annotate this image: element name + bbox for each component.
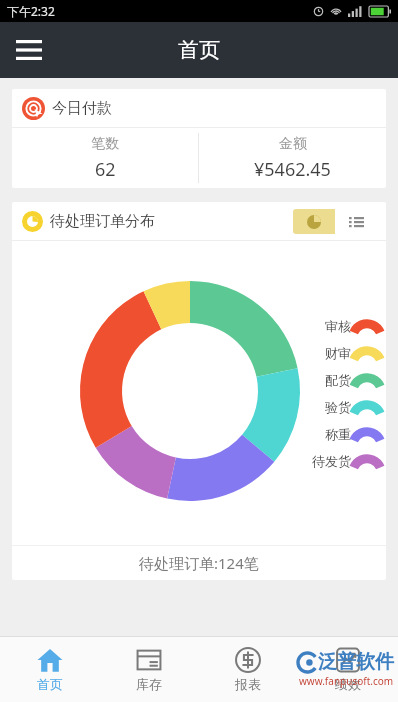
staticText: 待处理订单:124笔 (139, 553, 259, 573)
staticText: 待处理订单分布 (50, 212, 155, 231)
button[interactable]: 配货 (325, 372, 378, 388)
staticText: 称重 (325, 426, 351, 442)
button[interactable]: 审核 (325, 318, 378, 334)
staticText: 泛普软件 (318, 650, 394, 674)
button[interactable]: 验货 (325, 399, 378, 415)
staticText: 下午2:32 (7, 3, 55, 19)
staticText: 财审 (325, 345, 351, 361)
staticText: 金额 (279, 135, 307, 153)
staticText: 审核 (325, 318, 351, 334)
staticText: 验货 (325, 399, 351, 415)
staticText: 待发货 (312, 453, 351, 469)
staticText: www.fanpusoft.com (299, 674, 394, 688)
staticText: 报表 (235, 676, 261, 692)
button[interactable]: 库存 (99, 636, 198, 702)
button[interactable]: 金额 (199, 128, 386, 188)
button[interactable]: List view (335, 209, 377, 234)
button[interactable]: 财审 (325, 345, 378, 361)
staticText: 今日付款 (52, 99, 112, 118)
staticText: 库存 (136, 676, 162, 692)
staticText: 绩效 (335, 676, 361, 692)
staticText: 首页 (37, 676, 63, 692)
button[interactable]: 待发货 (312, 453, 378, 469)
button[interactable]: Pie chart view (293, 209, 335, 234)
button[interactable]: 绩效 (298, 636, 398, 702)
staticText: 62 (95, 157, 116, 182)
button[interactable]: 笔数 (12, 128, 198, 188)
button[interactable]: 报表 (198, 636, 298, 702)
staticText: 笔数 (91, 135, 119, 153)
staticText: ¥5462.45 (254, 157, 331, 182)
staticText: 配货 (325, 372, 351, 388)
button[interactable]: Menu (6, 27, 52, 73)
button[interactable]: 首页 (0, 636, 99, 702)
staticText: 首页 (178, 37, 220, 63)
button[interactable]: 称重 (325, 426, 378, 442)
